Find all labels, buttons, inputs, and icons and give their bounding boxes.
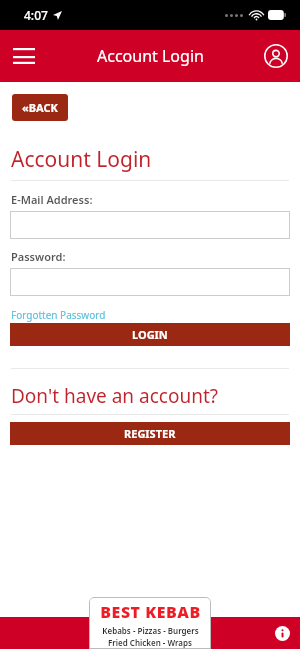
button[interactable]: LOGIN [10, 323, 290, 346]
button[interactable]: «BACK [12, 94, 68, 121]
button[interactable]: Account [252, 32, 300, 80]
staticText: Don't have an account? [11, 383, 219, 409]
staticText: Fried Chicken - Wraps [108, 637, 192, 648]
button[interactable]: Menu [0, 32, 48, 80]
staticText: REGISTER [124, 426, 176, 441]
staticText: LOGIN [132, 327, 168, 342]
button[interactable] [10, 211, 290, 239]
button[interactable] [10, 268, 290, 296]
staticText: Kebabs - Pizzas - Burgers [102, 625, 199, 636]
button[interactable]: Best Kebab logo [89, 597, 211, 649]
button[interactable]: Information [264, 617, 300, 649]
staticText: BEST KEBAB [100, 601, 201, 623]
staticText: «BACK [22, 100, 58, 115]
button[interactable]: REGISTER [10, 422, 290, 445]
staticText: E-Mail Address: [11, 192, 93, 207]
staticText: 4:07 [24, 7, 48, 23]
staticText: Password: [11, 249, 66, 264]
button[interactable]: Forgotten Password [11, 308, 106, 322]
staticText: Account Login [11, 145, 152, 174]
staticText: Account Login [97, 45, 204, 67]
